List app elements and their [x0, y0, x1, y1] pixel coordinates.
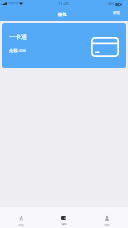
button[interactable]: 钱包: [42, 207, 85, 228]
staticText: 钱包: [61, 222, 67, 225]
staticText: 我的: [104, 223, 110, 226]
staticText: 余额: 0元: [9, 48, 27, 54]
staticText: 46%: [108, 2, 114, 6]
staticText: 管理: [113, 11, 120, 15]
button[interactable]: 运动: [0, 207, 42, 228]
staticText: 运动: [18, 223, 24, 226]
staticText: 中国移动: [8, 2, 18, 5]
staticText: 11:29: [58, 1, 69, 7]
staticText: 钱包: [58, 12, 67, 17]
button[interactable]: 我的: [85, 207, 128, 228]
other: Card: [91, 37, 119, 57]
staticText: 一卡通: [9, 33, 27, 41]
button[interactable]: 一卡通: [2, 23, 126, 68]
button[interactable]: 管理: [105, 8, 128, 18]
